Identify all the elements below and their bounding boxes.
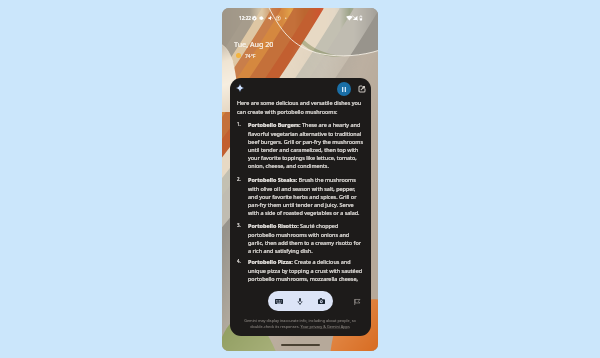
staticText: Portobello Burgers: These are a hearty a… [248, 121, 364, 169]
staticText: Portobello Pizza: Create a delicious and… [248, 258, 364, 282]
staticText: Gemini may display inaccurate info, incl… [238, 318, 362, 329]
staticText: 2. [237, 176, 248, 182]
button[interactable]: Open in Gemini app [356, 83, 367, 94]
button[interactable]: Voice input [289, 291, 310, 311]
staticText: 3. [237, 222, 248, 228]
staticText: 12:22 [239, 15, 252, 21]
staticText: Tue, Aug 20 [234, 39, 274, 49]
button[interactable]: Pause [337, 82, 351, 96]
staticText: 74°F [245, 53, 256, 60]
button[interactable]: Camera [310, 291, 333, 311]
staticText: Here are some delicious and versatile di… [237, 99, 367, 115]
staticText: Portobello Steaks: Brush the mushrooms w… [248, 176, 364, 216]
staticText: 4. [237, 258, 248, 264]
button[interactable]: Send feedback [351, 296, 362, 307]
button[interactable]: Keyboard [268, 291, 289, 311]
staticText: 1. [237, 121, 248, 127]
staticText: Portobello Risotto: Sauté chopped portob… [248, 222, 364, 254]
